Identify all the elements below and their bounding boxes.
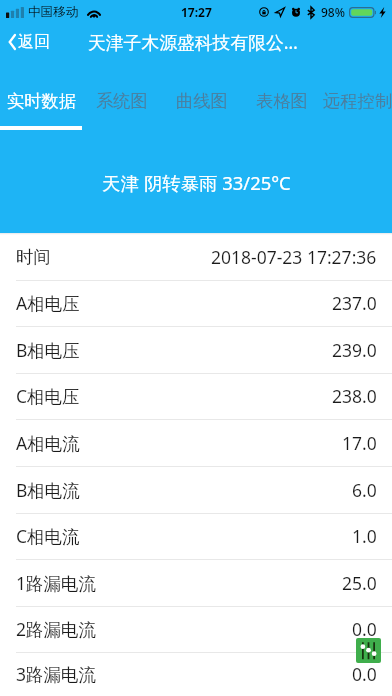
button[interactable]: 时间 [0, 233, 392, 280]
staticText: 曲线图 [176, 90, 228, 112]
button[interactable]: 2路漏电流 [0, 606, 392, 652]
button[interactable]: 远程控制 [322, 74, 392, 122]
staticText: 0.0 [352, 662, 377, 686]
staticText: 2018-07-23 17:27:36 [211, 245, 377, 269]
staticText: 3路漏电流 [16, 662, 97, 686]
button[interactable]: C相电压 [0, 373, 392, 419]
staticText: 表格图 [256, 90, 308, 112]
staticText: 系统图 [96, 90, 148, 112]
button[interactable]: C相电流 [0, 513, 392, 559]
staticText: 98% [321, 4, 345, 20]
staticText: 天津子木源盛科技有限公… [88, 30, 298, 54]
staticText: C相电流 [16, 524, 80, 548]
staticText: 1路漏电流 [16, 571, 97, 595]
staticText: 天津 阴转暴雨 33/25°C [102, 170, 291, 195]
staticText: 237.0 [332, 291, 377, 315]
staticText: 17.0 [342, 431, 377, 455]
button[interactable]: 系统图 [82, 74, 162, 122]
button[interactable]: B相电压 [0, 326, 392, 373]
button[interactable]: A相电流 [0, 419, 392, 466]
staticText: 返回 [18, 32, 50, 52]
staticText: 0.0 [352, 617, 377, 641]
button[interactable]: B相电流 [0, 466, 392, 513]
staticText: C相电压 [16, 384, 80, 408]
staticText: 239.0 [332, 338, 377, 362]
button[interactable]: 实时数据 [2, 74, 82, 122]
staticText: B相电压 [16, 338, 80, 362]
staticText: 17:27 [181, 4, 212, 20]
button[interactable]: A相电压 [0, 280, 392, 326]
staticText: 238.0 [332, 384, 377, 408]
staticText: A相电压 [16, 291, 80, 315]
staticText: 时间 [16, 246, 51, 268]
staticText: 1.0 [352, 524, 377, 548]
button[interactable]: 1路漏电流 [0, 559, 392, 606]
staticText: B相电流 [16, 478, 80, 502]
staticText: 25.0 [342, 571, 377, 595]
staticText: A相电流 [16, 431, 80, 455]
staticText: 2路漏电流 [16, 617, 97, 641]
button[interactable]: 返回 [9, 32, 50, 52]
staticText: 中国移动 [28, 4, 79, 20]
staticText: 6.0 [352, 478, 377, 502]
staticText: 远程控制 [323, 90, 392, 112]
button[interactable]: 3路漏电流 [0, 652, 392, 696]
button[interactable]: Settings [356, 638, 381, 663]
button[interactable]: 曲线图 [162, 74, 242, 122]
staticText: 实时数据 [7, 90, 77, 112]
button[interactable]: 表格图 [242, 74, 322, 122]
